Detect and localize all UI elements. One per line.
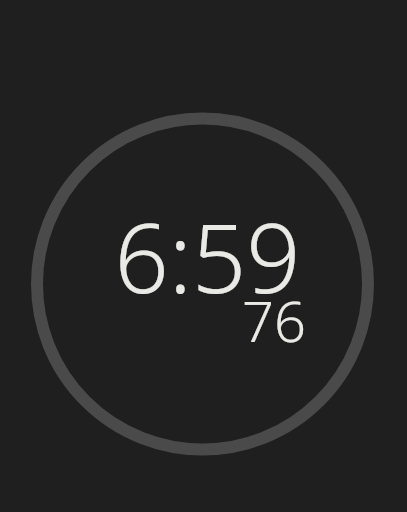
button[interactable]: Watch face showing 6:59	[0, 0, 407, 512]
